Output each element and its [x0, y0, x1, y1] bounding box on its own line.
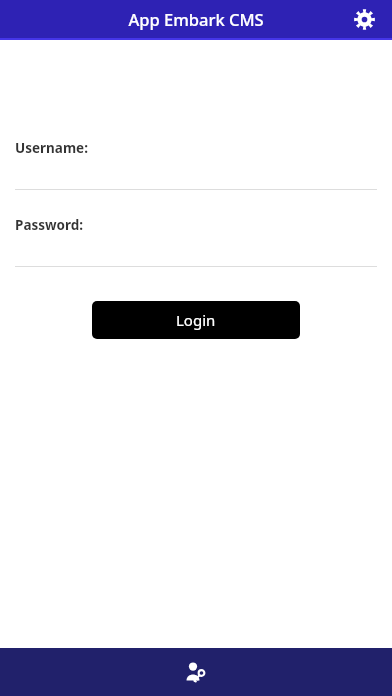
button[interactable]: Settings: [346, 1, 382, 37]
staticText: App Embark CMS: [0, 8, 392, 30]
staticText: Username:: [15, 139, 88, 157]
staticText: Login: [176, 310, 216, 330]
button[interactable]: Login: [92, 301, 300, 339]
staticText: Password:: [15, 216, 84, 234]
button[interactable]: Manage accounts: [174, 650, 218, 694]
